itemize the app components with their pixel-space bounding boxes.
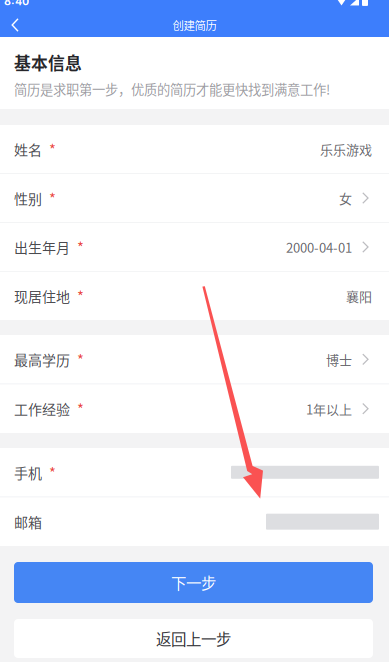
staticText: 邮箱 [14, 512, 42, 532]
button[interactable]: 出生年月 [0, 223, 389, 271]
staticText: * [77, 285, 84, 306]
staticText: 简历是求职第一步，优质的简历才能更快找到满意工作! [14, 79, 330, 99]
staticText: 工作经验 [14, 399, 70, 419]
button[interactable]: 邮箱 [0, 497, 389, 546]
staticText: * [77, 236, 84, 258]
staticText: 8:40 [4, 0, 29, 8]
staticText: 乐乐游戏 [320, 140, 372, 158]
button[interactable]: 手机 [0, 448, 389, 497]
button[interactable]: 返回上一步 [14, 619, 373, 658]
button[interactable]: 下一步 [14, 562, 373, 603]
staticText: * [49, 138, 56, 160]
staticText: 返回上一步 [156, 627, 231, 650]
button[interactable]: 姓名 [0, 125, 389, 173]
staticText: 2000-04-01 [286, 237, 352, 256]
staticText: 性别 [14, 188, 42, 208]
staticText: 1年以上 [306, 399, 352, 418]
staticText: * [49, 187, 56, 209]
staticText: 最高学历 [14, 349, 70, 369]
staticText: * [77, 349, 84, 370]
staticText: 手机 [14, 462, 42, 482]
button[interactable]: 工作经验 [0, 384, 389, 433]
button[interactable]: Back [0, 13, 30, 37]
staticText: 创建简历 [172, 17, 216, 33]
staticText: 基本信息 [14, 50, 82, 74]
staticText: 下一步 [171, 571, 216, 594]
staticText: * [77, 398, 84, 419]
staticText: 襄阳 [346, 286, 372, 305]
button[interactable]: 现居住地 [0, 272, 389, 320]
button[interactable]: 性别 [0, 174, 389, 222]
staticText: 女 [339, 189, 352, 207]
staticText: 博士 [326, 350, 352, 369]
staticText: 出生年月 [14, 237, 70, 257]
staticText: 姓名 [14, 139, 42, 159]
button[interactable]: 最高学历 [0, 335, 389, 384]
staticText: 现居住地 [14, 286, 70, 306]
staticText: * [49, 462, 56, 483]
